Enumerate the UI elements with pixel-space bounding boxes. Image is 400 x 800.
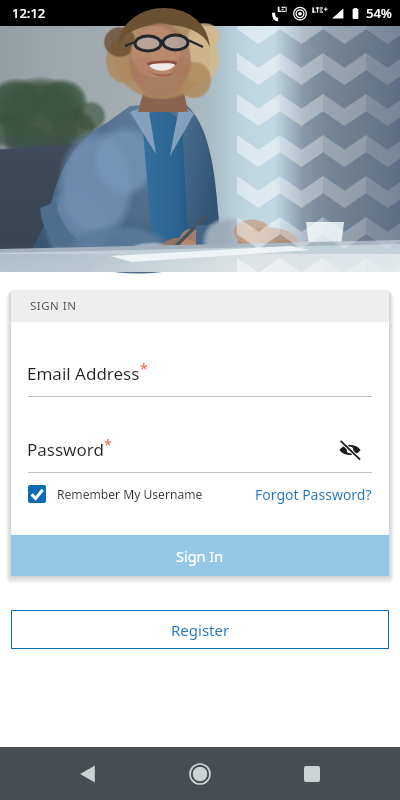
button[interactable]: Home [176,750,224,798]
staticText: 54% [366,4,392,22]
staticText: Register [171,620,230,640]
button[interactable]: Recent apps [288,750,336,798]
staticText: * [104,435,112,454]
staticText: SIGN IN [30,298,77,314]
button[interactable]: Remember My Username [28,483,203,505]
staticText: Forgot Password? [255,485,372,504]
staticText: Sign In [176,546,224,566]
button[interactable]: Register [11,610,389,649]
staticText: Email Address [27,362,140,385]
button[interactable]: Sign In [11,535,389,576]
staticText: 12:12 [12,4,46,22]
button[interactable]: Forgot Password? [255,483,372,505]
staticText: Remember My Username [57,486,203,502]
staticText: * [140,359,148,378]
button[interactable]: Back [64,750,112,798]
staticText: Password [27,438,104,461]
button[interactable]: Show password [334,434,366,466]
